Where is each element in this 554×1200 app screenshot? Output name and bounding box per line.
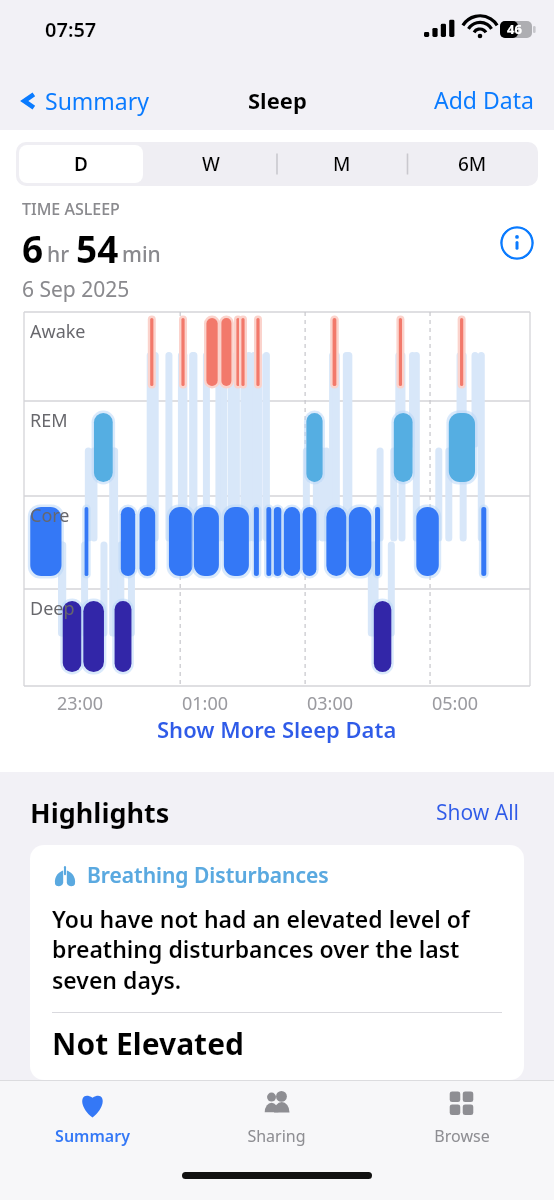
other: Lungs	[52, 865, 78, 887]
button[interactable]: Show All	[432, 794, 524, 831]
staticText: Awake	[30, 319, 86, 344]
staticText: Highlights	[30, 794, 170, 831]
button[interactable]: D	[19, 145, 143, 183]
button[interactable]: Summary	[0, 1081, 184, 1155]
staticText: Deep	[30, 596, 75, 621]
staticText: 46	[507, 20, 522, 38]
staticText: D	[74, 151, 88, 177]
staticText: 6 Sep 2025	[22, 275, 130, 304]
button[interactable]: Lungs	[30, 845, 524, 1080]
staticText: 6M	[458, 151, 487, 177]
button[interactable]: M	[279, 145, 404, 183]
staticText: Sleep	[248, 85, 307, 115]
button[interactable]: Information	[500, 226, 534, 260]
staticText: 23:00	[57, 691, 104, 716]
button[interactable]: W	[149, 145, 273, 183]
staticText: min	[122, 240, 161, 269]
staticText: Summary	[55, 1125, 130, 1147]
staticText: 07:57	[45, 16, 97, 43]
button[interactable]: Show More Sleep Data	[149, 710, 405, 748]
button[interactable]: 6M	[410, 145, 535, 183]
staticText: Not Elevated	[52, 1023, 244, 1064]
staticText: REM	[30, 408, 68, 433]
staticText: hr	[47, 240, 70, 269]
staticText: Core	[30, 503, 70, 528]
staticText: 01:00	[182, 691, 229, 716]
button[interactable]: Sharing	[184, 1081, 369, 1155]
staticText: 54	[76, 223, 119, 273]
staticText: Summary	[45, 85, 149, 116]
staticText: You have not had an elevated level of br…	[52, 903, 502, 996]
button[interactable]: Browse	[369, 1081, 554, 1155]
button[interactable]: Summary	[14, 85, 153, 116]
staticText: W	[202, 151, 220, 177]
staticText: TIME ASLEEP	[22, 198, 120, 220]
staticText: 05:00	[432, 691, 479, 716]
staticText: Show More Sleep Data	[157, 714, 397, 744]
staticText: 6	[22, 223, 44, 273]
button[interactable]: Add Data	[434, 84, 534, 115]
staticText: 03:00	[307, 691, 354, 716]
staticText: Show All	[436, 798, 520, 827]
staticText: M	[333, 151, 351, 177]
staticText: Breathing Disturbances	[87, 861, 329, 890]
staticText: Browse	[434, 1125, 490, 1147]
staticText: Sharing	[247, 1125, 306, 1147]
